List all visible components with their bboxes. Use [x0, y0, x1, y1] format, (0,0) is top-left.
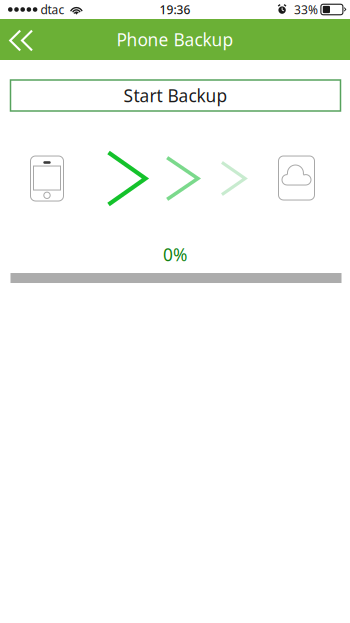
staticText: 0% [163, 243, 187, 266]
button[interactable]: Back [0, 18, 45, 60]
staticText: 33% [294, 1, 318, 17]
staticText: Phone Backup [116, 28, 233, 51]
button[interactable]: Start Backup [9, 80, 340, 111]
staticText: Start Backup [123, 84, 227, 107]
staticText: dtac [40, 1, 64, 17]
staticText: 19:36 [159, 1, 190, 17]
